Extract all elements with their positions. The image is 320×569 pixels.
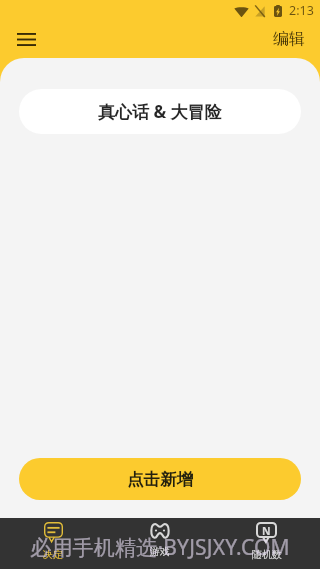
button[interactable]: N	[213, 518, 320, 569]
button[interactable]: 决定	[0, 518, 106, 569]
staticText: N	[262, 524, 271, 538]
button[interactable]: 编辑	[267, 25, 311, 53]
staticText: 真心话 & 大冒险	[98, 100, 222, 123]
staticText: 点击新增	[127, 469, 193, 490]
button[interactable]: 点击新增	[19, 458, 301, 500]
button[interactable]: 游戏	[106, 518, 213, 569]
staticText: 必用手机精选·BYJSJXY.COM	[30, 533, 290, 562]
button[interactable]: 真心话 & 大冒险	[19, 89, 301, 134]
staticText: 2:13	[289, 2, 314, 19]
staticText: 决定	[43, 548, 63, 561]
staticText: 游戏	[150, 545, 170, 558]
staticText: 随机数	[252, 548, 282, 561]
staticText: 编辑	[273, 29, 305, 49]
button[interactable]: Menu	[8, 21, 44, 57]
